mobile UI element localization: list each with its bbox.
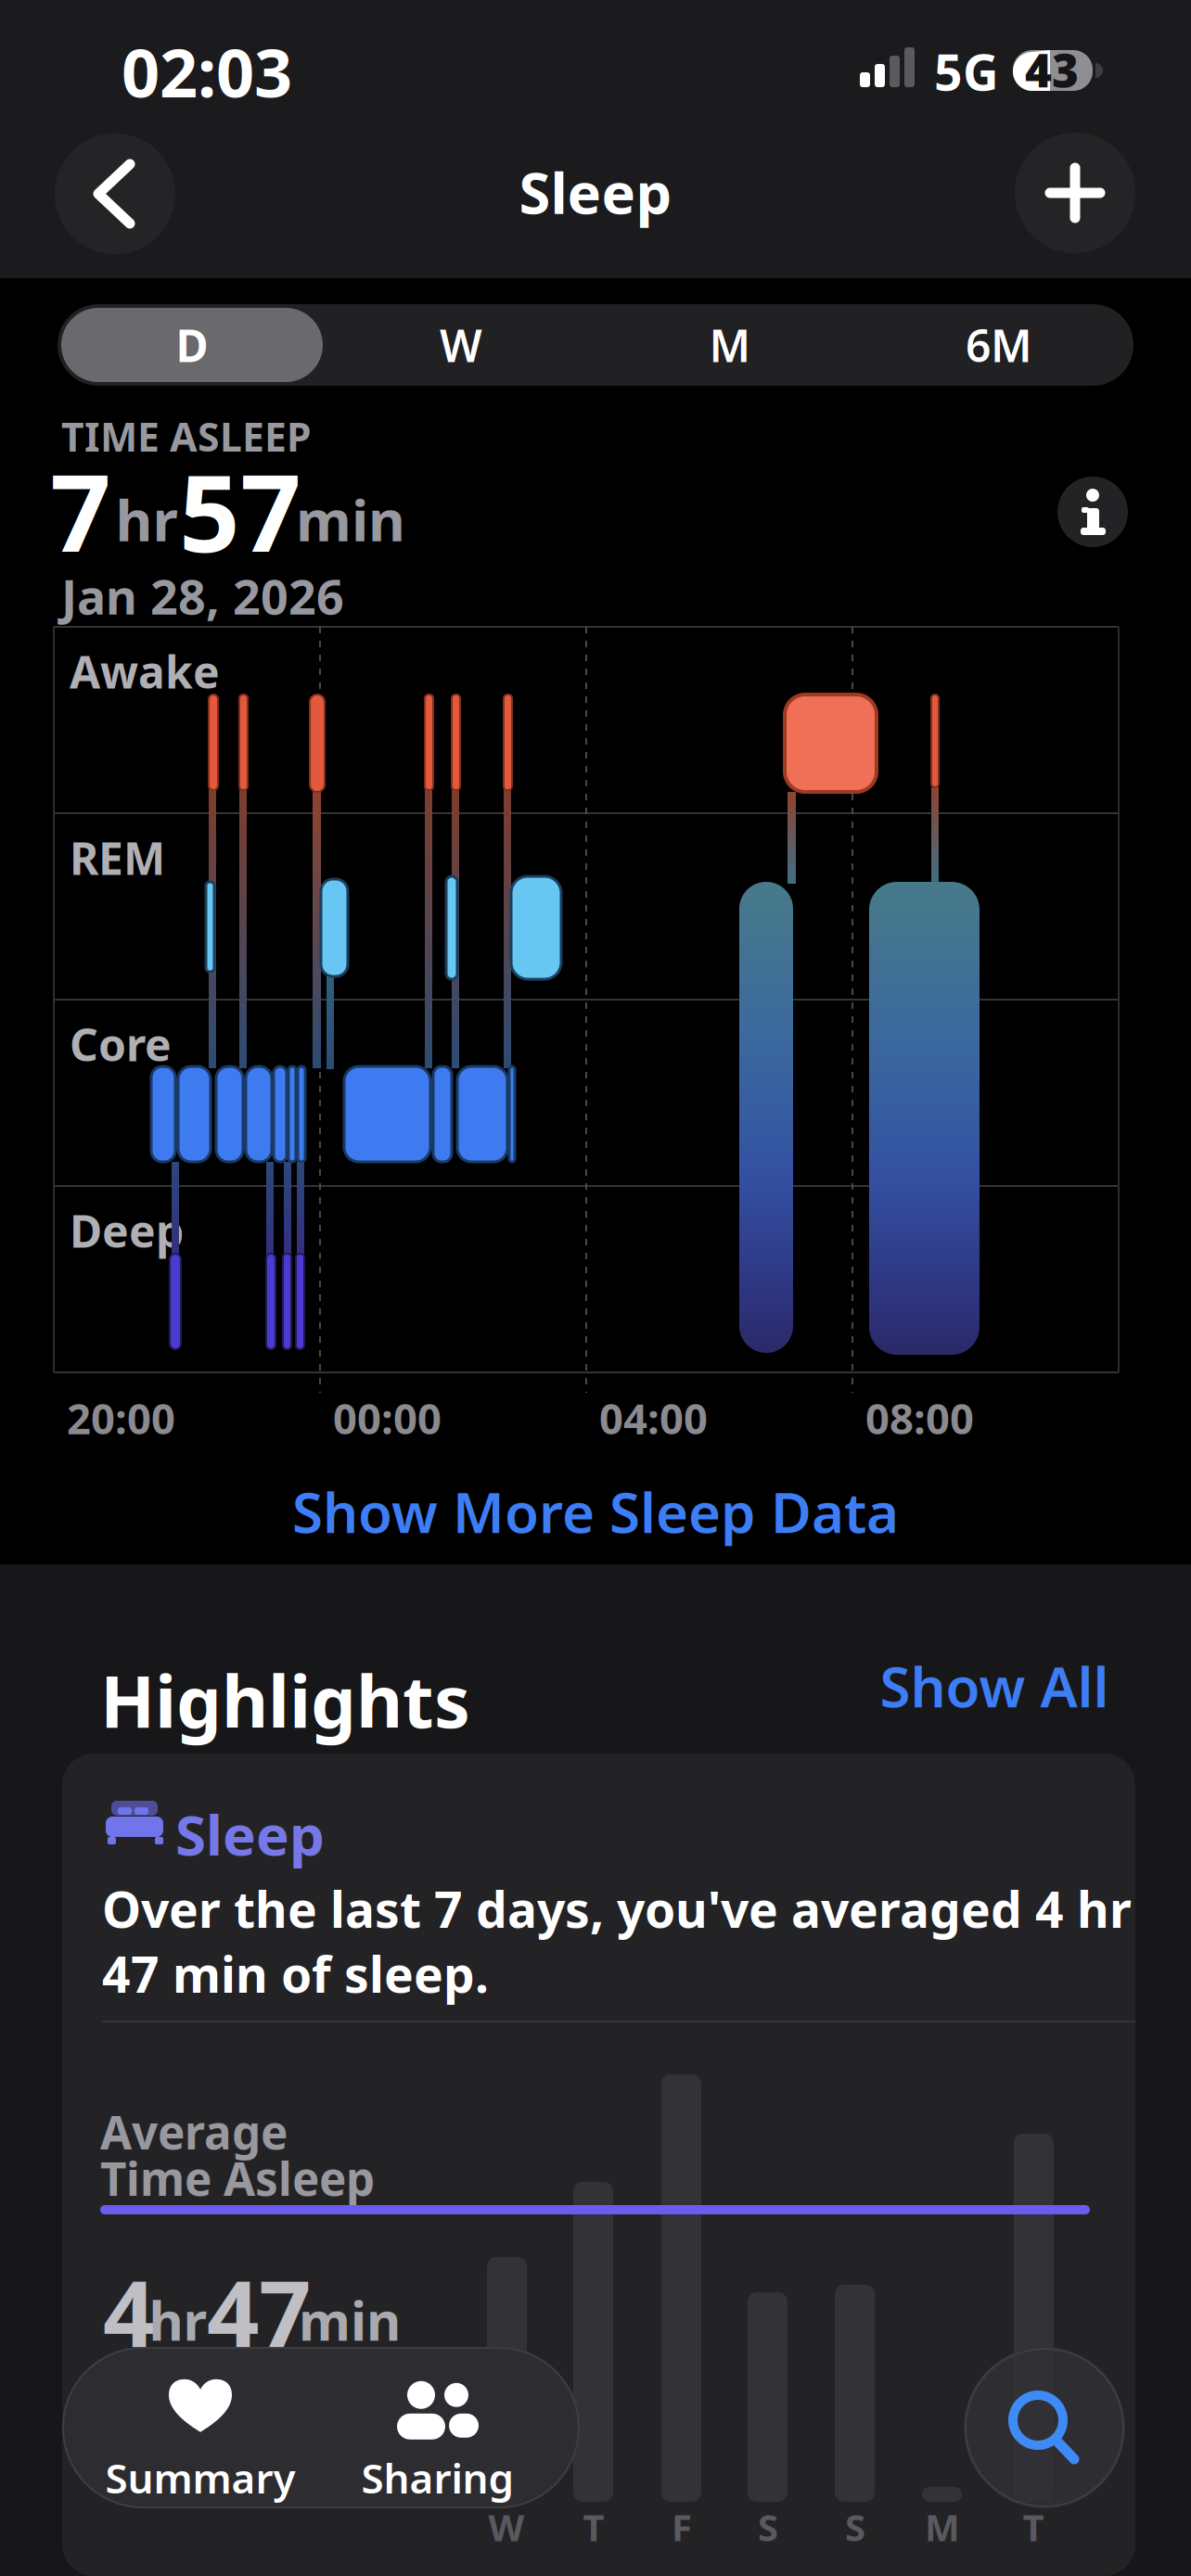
button[interactable]: Sharing <box>322 2367 554 2516</box>
staticText: 04:00 <box>599 1390 708 1446</box>
staticText: S <box>758 2502 778 2551</box>
staticText: 08:00 <box>865 1390 974 1446</box>
staticText: Show More Sleep Data <box>292 1475 899 1548</box>
button[interactable]: Show All <box>880 1649 1109 1723</box>
staticText: Core <box>70 1014 172 1074</box>
staticText: Sharing <box>361 2451 514 2505</box>
button[interactable]: Sleep <box>62 1753 1135 2576</box>
staticText: Awake <box>70 642 220 701</box>
staticText: 00:00 <box>333 1390 442 1446</box>
staticText: W <box>488 2502 525 2551</box>
staticText: Jan 28, 2026 <box>61 564 344 628</box>
staticText: 57 <box>179 440 301 582</box>
staticText: REM <box>70 828 165 887</box>
staticText: T <box>1023 2502 1044 2551</box>
staticText: 20:00 <box>67 1390 175 1446</box>
staticText: F <box>672 2502 692 2551</box>
staticText: Show All <box>880 1649 1109 1723</box>
button[interactable]: 6M <box>864 304 1133 386</box>
staticText: Highlights <box>100 1652 470 1748</box>
button[interactable] <box>1015 133 1135 253</box>
staticText: T <box>583 2502 604 2551</box>
staticText: Time Asleep <box>100 2148 375 2208</box>
staticText: 5G <box>934 39 999 104</box>
staticText: hr <box>115 482 178 557</box>
staticText: TIME ASLEEP <box>61 410 311 462</box>
button[interactable]: Summary <box>84 2367 316 2516</box>
staticText: S <box>845 2502 865 2551</box>
button[interactable]: D <box>58 304 327 386</box>
staticText: Sleep <box>175 1797 325 1871</box>
staticText: 4 <box>103 2251 155 2372</box>
staticText: 7 <box>50 440 111 582</box>
staticText: 02:03 <box>122 27 292 116</box>
button[interactable] <box>1057 477 1128 547</box>
button[interactable]: W <box>327 304 595 386</box>
staticText: Sleep <box>519 154 672 230</box>
staticText: min <box>296 482 405 557</box>
staticText: 6M <box>966 315 1032 374</box>
button[interactable] <box>55 134 175 254</box>
staticText: Deep <box>70 1201 184 1260</box>
staticText: min <box>299 2285 401 2355</box>
button[interactable]: M <box>595 304 864 386</box>
button[interactable] <box>964 2347 1125 2508</box>
staticText: M <box>709 315 751 374</box>
staticText: 47 <box>207 2251 311 2372</box>
staticText: Summary <box>105 2451 295 2505</box>
staticText: Over the last 7 days, you've averaged 4 … <box>102 1876 1132 1942</box>
staticText: Average <box>100 2101 288 2162</box>
staticText: M <box>925 2502 960 2551</box>
staticText: 47 min of sleep. <box>102 1941 489 2006</box>
button[interactable]: Show More Sleep Data <box>292 1475 899 1548</box>
staticText: 43 <box>1025 39 1079 100</box>
staticText: D <box>176 315 208 374</box>
staticText: hr <box>149 2285 207 2355</box>
staticText: W <box>440 315 482 374</box>
